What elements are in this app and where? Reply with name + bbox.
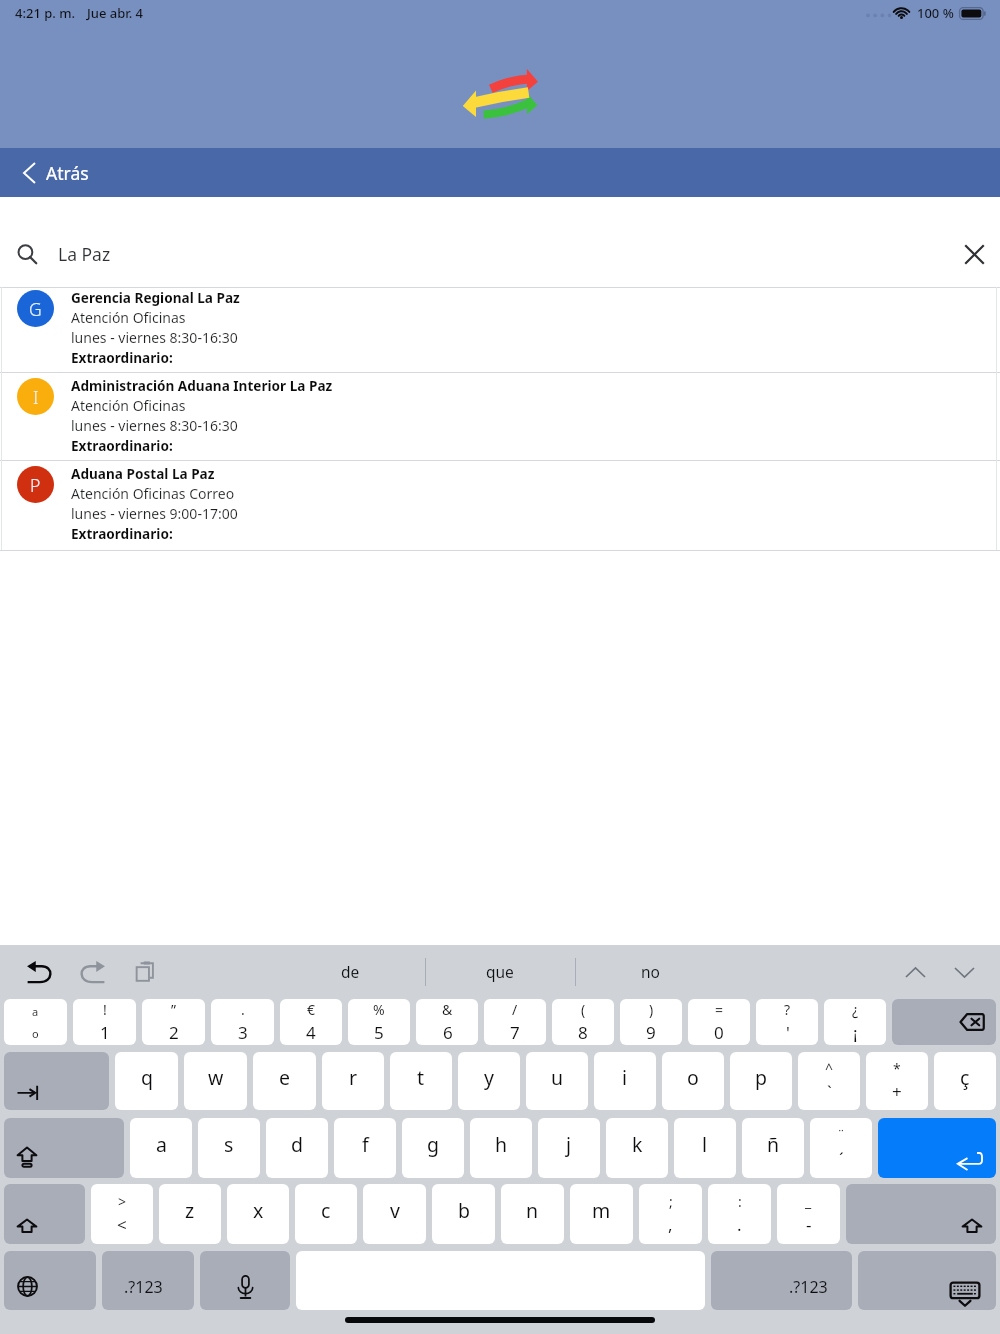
staticText: Extraordinario:	[71, 348, 173, 367]
button[interactable]: I	[0, 372, 1000, 460]
button[interactable]: f	[334, 1118, 396, 1178]
button[interactable]: w	[184, 1052, 247, 1110]
button[interactable]: %	[348, 999, 410, 1045]
button[interactable]: Intro	[878, 1118, 996, 1178]
button[interactable]: u	[526, 1052, 588, 1110]
button[interactable]: €	[280, 999, 342, 1045]
button[interactable]: _	[777, 1184, 840, 1244]
button[interactable]: a	[130, 1118, 192, 1178]
button[interactable]: c	[295, 1184, 357, 1244]
button[interactable]: Retroceso	[892, 999, 996, 1045]
staticText: .?123	[124, 1276, 163, 1298]
staticText: p	[755, 1064, 767, 1091]
button[interactable]: Deshacer	[21, 954, 57, 990]
button[interactable]: P	[0, 460, 1000, 550]
button[interactable]: ¨	[810, 1118, 872, 1178]
button[interactable]: l	[674, 1118, 736, 1178]
button[interactable]: *	[866, 1052, 928, 1110]
staticText: 7	[510, 1021, 520, 1044]
staticText: &	[442, 1000, 453, 1019]
staticText: ”	[171, 1000, 177, 1019]
button[interactable]: ç	[934, 1052, 996, 1110]
staticText: >	[118, 1192, 127, 1211]
button[interactable]: =	[688, 999, 750, 1045]
button[interactable]: (	[552, 999, 614, 1045]
button[interactable]: q	[115, 1052, 178, 1110]
button[interactable]: G	[0, 287, 1000, 372]
button[interactable]: v	[363, 1184, 426, 1244]
button[interactable]: Borrar búsqueda	[959, 239, 989, 269]
button[interactable]: Tabulador	[4, 1052, 109, 1110]
staticText: ¿	[852, 1000, 859, 1019]
button[interactable]: de	[275, 945, 425, 998]
staticText: no	[641, 961, 660, 982]
button[interactable]: h	[470, 1118, 532, 1178]
button[interactable]: )	[620, 999, 682, 1045]
staticText: d	[291, 1131, 303, 1158]
staticText: a	[32, 1004, 39, 1019]
button[interactable]: >	[91, 1184, 153, 1244]
staticText: +	[892, 1080, 902, 1103]
button[interactable]: r	[322, 1052, 384, 1110]
button[interactable]: x	[227, 1184, 289, 1244]
staticText: w	[208, 1064, 224, 1091]
staticText: h	[495, 1131, 508, 1158]
button[interactable]: t	[390, 1052, 452, 1110]
button[interactable]: Mayúsculas	[846, 1184, 996, 1244]
button[interactable]: .?123	[711, 1251, 852, 1310]
button[interactable]: k	[606, 1118, 668, 1178]
button[interactable]: y	[458, 1052, 520, 1110]
staticText: -	[806, 1213, 812, 1236]
staticText: j	[566, 1131, 572, 1158]
button[interactable]: ;	[639, 1184, 702, 1244]
button[interactable]: ?	[756, 999, 818, 1045]
button[interactable]: :	[708, 1184, 771, 1244]
staticText: r	[349, 1064, 358, 1091]
button[interactable]: m	[570, 1184, 633, 1244]
button[interactable]: Atrás	[0, 148, 1000, 197]
button[interactable]: /	[484, 999, 546, 1045]
button[interactable]: s	[198, 1118, 260, 1178]
button[interactable]: Dictado	[200, 1251, 290, 1310]
staticText: 3	[238, 1021, 248, 1044]
button[interactable]: ¿	[824, 999, 886, 1045]
staticText: P	[30, 473, 41, 497]
staticText: e	[279, 1064, 290, 1091]
button[interactable]: ^	[798, 1052, 860, 1110]
button[interactable]: j	[538, 1118, 600, 1178]
button[interactable]: .?123	[102, 1251, 194, 1310]
button[interactable]: Bloq mayús	[4, 1118, 124, 1178]
button[interactable]: Ocultar teclado	[858, 1251, 996, 1310]
button[interactable]: Rehacer	[74, 954, 110, 990]
button[interactable]: Cambiar idioma	[4, 1251, 96, 1310]
staticText: Atención Oficinas Correo	[71, 484, 235, 503]
button[interactable]: n	[501, 1184, 564, 1244]
button[interactable]: no	[575, 945, 725, 998]
button[interactable]: e	[253, 1052, 316, 1110]
staticText: v	[390, 1197, 400, 1224]
button[interactable]: b	[432, 1184, 495, 1244]
button[interactable]: .	[211, 999, 274, 1045]
staticText: lunes - viernes 9:00-17:00	[71, 504, 238, 523]
staticText: G	[29, 297, 42, 321]
button[interactable]: a	[4, 999, 67, 1045]
button[interactable]: Mayúsculas	[4, 1184, 85, 1244]
button[interactable]: p	[730, 1052, 792, 1110]
staticText: a	[156, 1131, 167, 1158]
button[interactable]: !	[73, 999, 136, 1045]
button[interactable]: ”	[142, 999, 205, 1045]
button[interactable]: Sugerencia siguiente	[942, 950, 986, 994]
button[interactable]: Pegar	[127, 954, 163, 990]
button[interactable]: g	[402, 1118, 464, 1178]
button[interactable]: z	[159, 1184, 221, 1244]
button[interactable]: ñ	[742, 1118, 804, 1178]
button[interactable]: d	[266, 1118, 328, 1178]
button[interactable]: Sugerencia anterior	[893, 950, 937, 994]
staticText: .	[241, 1000, 245, 1019]
staticText: `	[827, 1080, 832, 1103]
button[interactable]: que	[425, 945, 575, 998]
button[interactable]: o	[662, 1052, 724, 1110]
button[interactable]: i	[594, 1052, 656, 1110]
button[interactable]: &	[416, 999, 478, 1045]
